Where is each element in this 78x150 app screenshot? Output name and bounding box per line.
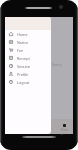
staticText: Profile: [17, 72, 29, 77]
button[interactable]: Session: [5, 62, 51, 70]
button[interactable]: Logout: [5, 78, 51, 86]
staticText: Home: [61, 128, 69, 136]
staticText: Fee: [17, 48, 24, 53]
staticText: Logout: [17, 80, 30, 85]
staticText: Session: [17, 64, 31, 69]
button[interactable]: Fee: [5, 46, 51, 54]
button[interactable]: Receipt: [5, 54, 51, 62]
button[interactable]: Home: [5, 30, 51, 38]
staticText: Home: [17, 32, 28, 37]
button[interactable]: Home tab: [60, 120, 68, 133]
staticText: Receipt: [17, 56, 30, 61]
staticText: Notice: [17, 40, 29, 45]
button[interactable]: Notice: [5, 38, 51, 46]
staticText: Sorry: [52, 62, 62, 67]
button[interactable]: Profile: [5, 70, 51, 78]
